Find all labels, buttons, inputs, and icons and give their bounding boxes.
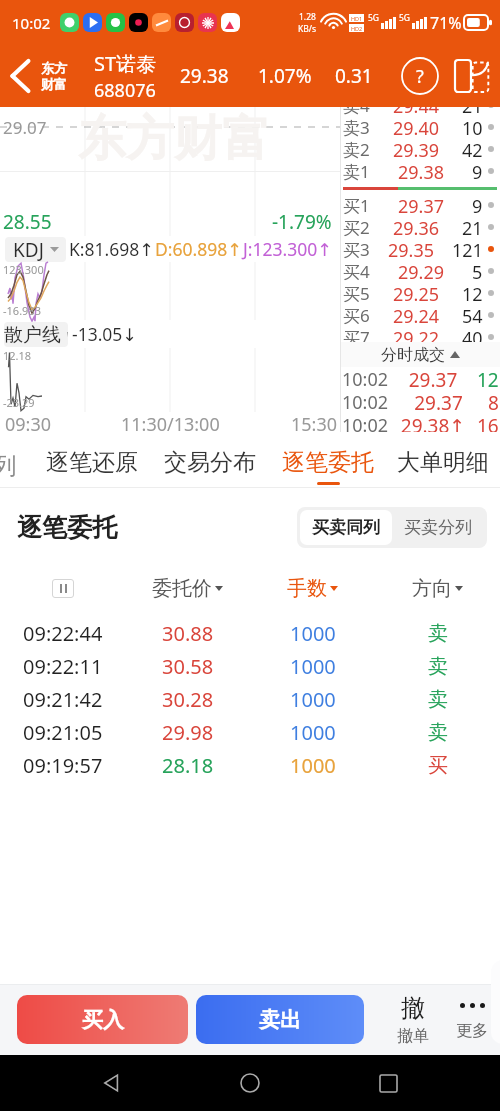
staticText: 40: [462, 326, 483, 348]
button[interactable]: 10:02: [341, 390, 500, 413]
staticText: HD1: [351, 15, 363, 22]
button[interactable]: 10:02: [341, 413, 500, 432]
staticText: 方向: [412, 576, 452, 601]
staticText: 29.38: [370, 160, 472, 182]
button[interactable]: 交易分布: [164, 438, 256, 494]
staticText: 9: [472, 160, 483, 182]
staticText: 121: [452, 238, 483, 260]
button[interactable]: 卖出: [196, 995, 364, 1044]
staticText: 09:22:11: [23, 653, 103, 680]
button[interactable]: 09:19:57: [0, 749, 500, 782]
button[interactable]: 买5: [341, 282, 500, 304]
staticText: 手数: [287, 576, 327, 601]
staticText: 5G: [399, 12, 411, 24]
staticText: 688076: [94, 78, 156, 103]
button[interactable]: 10:02: [341, 367, 500, 390]
button[interactable]: 更多: [455, 998, 489, 1041]
staticText: ?: [416, 64, 424, 89]
button[interactable]: Home: [224, 1057, 276, 1109]
button[interactable]: 分时成交: [341, 342, 500, 367]
staticText: 29.38: [180, 63, 229, 89]
staticText: 21: [462, 107, 483, 116]
staticText: 买卖同列: [312, 517, 380, 538]
staticText: 09:30: [5, 412, 52, 432]
button[interactable]: 卖1: [341, 160, 500, 182]
button[interactable]: 买6: [341, 304, 500, 326]
button[interactable]: 买2: [341, 216, 500, 238]
button[interactable]: 撤: [396, 993, 430, 1046]
staticText: 1000: [290, 686, 336, 713]
staticText: 买卖分列: [404, 517, 472, 538]
staticText: 1.07%: [258, 63, 312, 89]
button[interactable]: Back: [86, 1057, 138, 1109]
button[interactable]: 逐笔还原: [46, 438, 138, 494]
button[interactable]: Add to watchlist: [452, 56, 492, 96]
button[interactable]: Help: [400, 56, 440, 96]
button[interactable]: 逐笔委托: [282, 438, 374, 494]
button[interactable]: 方向: [375, 567, 500, 610]
staticText: D:60.898↑: [155, 237, 242, 261]
staticText: ST诺泰: [94, 50, 157, 77]
staticText: 16: [477, 413, 499, 432]
staticText: K:81.698↑: [69, 237, 154, 261]
staticText: 15:30: [291, 412, 338, 432]
staticText: 29.39: [370, 138, 462, 160]
staticText: 卖: [428, 720, 448, 745]
staticText: 买4: [343, 260, 370, 282]
button[interactable]: 买4: [341, 260, 500, 282]
button[interactable]: Recent apps: [362, 1057, 414, 1109]
staticText: KB/s: [298, 23, 317, 35]
staticText: 30.88: [162, 620, 214, 647]
button[interactable]: Back: [0, 45, 40, 107]
staticText: 29.37: [370, 194, 472, 216]
staticText: -23.29: [3, 395, 35, 410]
staticText: 29.07: [3, 116, 47, 139]
staticText: 1000: [290, 620, 336, 647]
staticText: 逐笔委托: [17, 512, 117, 543]
staticText: 更多: [456, 1021, 488, 1041]
staticText: 0.31: [335, 63, 373, 89]
staticText: -13.05↓: [72, 322, 138, 346]
staticText: 29.98: [162, 719, 214, 746]
staticText: 10: [462, 116, 483, 138]
staticText: 29.44: [370, 107, 462, 116]
staticText: 卖出: [259, 1007, 301, 1033]
staticText: 12: [477, 367, 499, 390]
button[interactable]: 手数: [250, 567, 375, 610]
staticText: 财富: [41, 76, 67, 92]
button[interactable]: 买3: [341, 238, 500, 260]
button[interactable]: 买7: [341, 326, 500, 348]
button[interactable]: Pause: [52, 579, 74, 598]
staticText: 东方: [41, 60, 67, 76]
staticText: KDJ: [13, 237, 44, 262]
staticText: 30.58: [162, 653, 214, 680]
staticText: 42: [462, 138, 483, 160]
button[interactable]: 09:21:05: [0, 716, 500, 749]
button[interactable]: 买1: [341, 194, 500, 216]
staticText: 买2: [343, 216, 370, 238]
staticText: 卖1: [343, 160, 370, 182]
button[interactable]: KDJ: [5, 237, 66, 262]
button[interactable]: 09:21:42: [0, 683, 500, 716]
button[interactable]: 09:22:44: [0, 617, 500, 650]
button[interactable]: 买卖同列: [300, 510, 392, 545]
button[interactable]: 卖4: [341, 107, 500, 116]
staticText: 29.25: [370, 282, 462, 304]
staticText: 逐笔还原: [46, 448, 138, 477]
button[interactable]: 大单明细: [397, 438, 489, 494]
button[interactable]: 散户线: [4, 322, 68, 347]
button[interactable]: 卖3: [341, 116, 500, 138]
staticText: 逐笔委托: [282, 448, 374, 477]
button[interactable]: 09:22:11: [0, 650, 500, 683]
staticText: 29.29: [370, 260, 472, 282]
staticText: 29.37: [389, 367, 477, 390]
staticText: 29.22: [370, 326, 462, 348]
button[interactable]: 委托价: [125, 567, 250, 610]
button[interactable]: 卖2: [341, 138, 500, 160]
staticText: 8: [488, 390, 499, 413]
staticText: 29.37: [389, 390, 488, 413]
staticText: 9: [472, 194, 483, 216]
button[interactable]: 买入: [17, 995, 188, 1044]
button[interactable]: 买卖分列: [392, 510, 484, 545]
